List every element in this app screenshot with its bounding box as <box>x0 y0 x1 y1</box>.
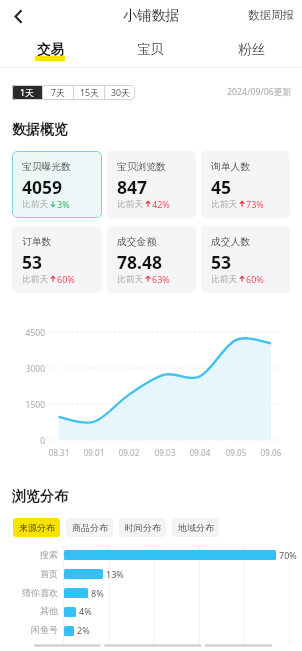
staticText: 13% <box>106 568 124 580</box>
button[interactable]: 宝贝 <box>100 31 201 67</box>
staticText: 45 <box>211 175 232 199</box>
button[interactable]: 1天 <box>12 85 42 100</box>
staticText: 小铺数据 <box>123 6 180 24</box>
staticText: 浏览分布 <box>12 488 68 506</box>
staticText: 70% <box>279 549 297 561</box>
staticText: 宝贝 <box>137 41 164 58</box>
staticText: 首页 <box>0 568 58 579</box>
staticText: 1天 <box>20 87 34 99</box>
staticText: 53 <box>211 250 232 274</box>
staticText: 8% <box>91 587 104 599</box>
staticText: 商品分布 <box>72 522 108 533</box>
staticText: 7天 <box>51 87 65 99</box>
staticText: 数据周报 <box>248 8 294 22</box>
staticText: 0 <box>0 435 45 447</box>
staticText: 比前天 <box>117 274 144 285</box>
staticText: 询单人数 <box>211 161 251 173</box>
button[interactable]: 时间分布 <box>119 518 166 537</box>
button[interactable]: 数据周报 <box>248 9 294 23</box>
staticText: 成交金额 <box>117 236 157 248</box>
staticText: 比前天 <box>211 199 238 210</box>
button[interactable]: 订单数 <box>12 226 102 293</box>
staticText: 比前天 <box>117 199 144 210</box>
button[interactable]: 成交金额 <box>107 226 196 293</box>
staticText: 4059 <box>22 175 63 199</box>
staticText: 数据概览 <box>12 121 68 139</box>
button[interactable]: 来源分布 <box>13 518 60 537</box>
staticText: 78.48 <box>117 250 162 274</box>
staticText: 847 <box>117 175 148 199</box>
button[interactable]: 商品分布 <box>66 518 113 537</box>
staticText: 2% <box>77 624 90 636</box>
staticText: 比前天 <box>22 274 49 285</box>
button[interactable]: 宝贝浏览数 <box>107 151 196 218</box>
staticText: 4% <box>79 605 92 617</box>
staticText: 2024/09/06更新 <box>227 86 292 98</box>
staticText: 订单数 <box>22 236 52 248</box>
staticText: 4500 <box>0 327 45 339</box>
staticText: 比前天 <box>211 274 238 285</box>
staticText: 1500 <box>0 399 45 411</box>
button[interactable]: 成交人数 <box>201 226 290 293</box>
button[interactable]: 粉丝 <box>201 31 302 67</box>
button[interactable]: 地域分布 <box>172 518 219 537</box>
staticText: 09.01 <box>77 447 111 458</box>
staticText: 60% <box>246 273 264 285</box>
staticText: 30天 <box>111 87 130 99</box>
staticText: 粉丝 <box>238 41 265 58</box>
staticText: 3% <box>57 198 70 210</box>
staticText: 交易 <box>37 41 64 58</box>
button[interactable]: 30天 <box>105 85 135 100</box>
staticText: 搜索 <box>0 549 58 560</box>
button[interactable]: 交易 <box>0 31 100 67</box>
staticText: 来源分布 <box>19 522 55 533</box>
staticText: 3000 <box>0 363 45 375</box>
button[interactable]: 15天 <box>74 85 104 100</box>
staticText: 09.02 <box>112 447 146 458</box>
button[interactable]: Back <box>5 3 31 29</box>
button[interactable]: 询单人数 <box>201 151 290 218</box>
staticText: 53 <box>22 250 43 274</box>
staticText: 地域分布 <box>178 522 214 533</box>
staticText: 09.03 <box>148 447 182 458</box>
staticText: 08.31 <box>42 447 76 458</box>
staticText: 09.06 <box>254 447 288 458</box>
staticText: 猜你喜欢 <box>0 587 58 598</box>
staticText: 73% <box>246 198 264 210</box>
staticText: 其他 <box>0 605 58 616</box>
staticText: 63% <box>152 273 170 285</box>
staticText: 60% <box>57 273 75 285</box>
staticText: 时间分布 <box>125 522 161 533</box>
staticText: 09.05 <box>219 447 253 458</box>
staticText: 42% <box>152 198 170 210</box>
staticText: 宝贝曝光数 <box>22 161 71 173</box>
button[interactable]: 7天 <box>43 85 73 100</box>
staticText: 15天 <box>80 87 99 99</box>
staticText: 成交人数 <box>211 236 251 248</box>
staticText: 比前天 <box>22 199 49 210</box>
staticText: 闲鱼号 <box>0 624 58 635</box>
staticText: 09.04 <box>183 447 217 458</box>
staticText: 宝贝浏览数 <box>117 161 166 173</box>
button[interactable]: 宝贝曝光数 <box>12 151 102 218</box>
